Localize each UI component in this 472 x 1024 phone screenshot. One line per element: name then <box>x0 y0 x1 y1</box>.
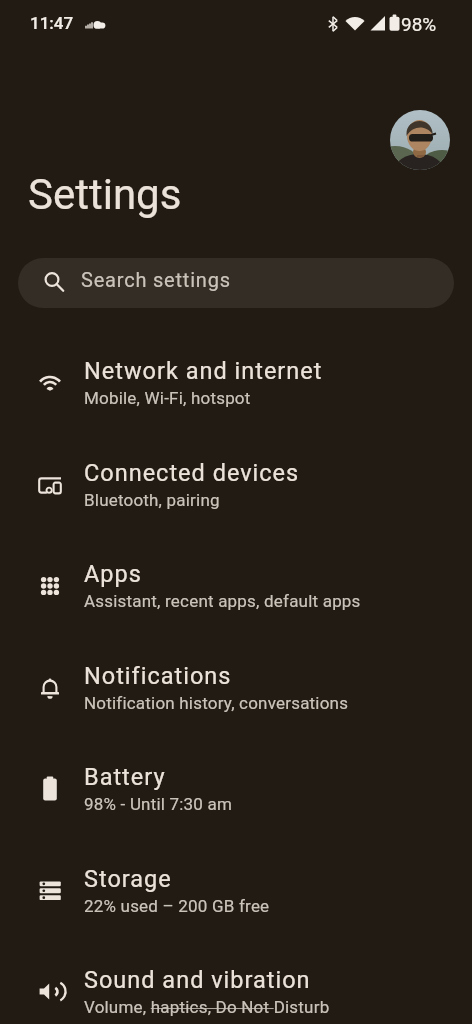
button[interactable]: Network and internet <box>0 332 472 433</box>
staticText: Battery <box>84 763 166 791</box>
staticText: Apps <box>84 560 142 588</box>
staticText: 98% <box>401 13 437 35</box>
staticText: Notification history, conversations <box>84 693 349 713</box>
staticText: Notifications <box>84 662 232 690</box>
button[interactable]: Search settings <box>18 258 454 308</box>
staticText: Settings <box>28 170 182 219</box>
staticText: 22% used – 200 GB free <box>84 896 270 916</box>
staticText: Mobile, Wi-Fi, hotspot <box>84 388 251 408</box>
staticText: Storage <box>84 865 172 893</box>
staticText: Assistant, recent apps, default apps <box>84 591 361 611</box>
staticText: Search settings <box>81 268 231 291</box>
button[interactable]: Storage <box>0 840 472 941</box>
button[interactable]: Apps <box>0 535 472 636</box>
staticText: Connected devices <box>84 459 300 487</box>
button[interactable]: Sound and vibration <box>0 941 472 1024</box>
staticText: Bluetooth, pairing <box>84 490 220 510</box>
staticText: Network and internet <box>84 357 323 385</box>
staticText: 11:47 <box>30 13 74 33</box>
staticText: Sound and vibration <box>84 966 311 994</box>
button[interactable] <box>390 110 450 170</box>
button[interactable]: Notifications <box>0 637 472 738</box>
staticText: 98% - Until 7:30 am <box>84 794 233 814</box>
staticText: Volume, haptics, Do Not Disturb <box>84 997 330 1017</box>
button[interactable]: Connected devices <box>0 434 472 535</box>
button[interactable]: Battery <box>0 738 472 839</box>
